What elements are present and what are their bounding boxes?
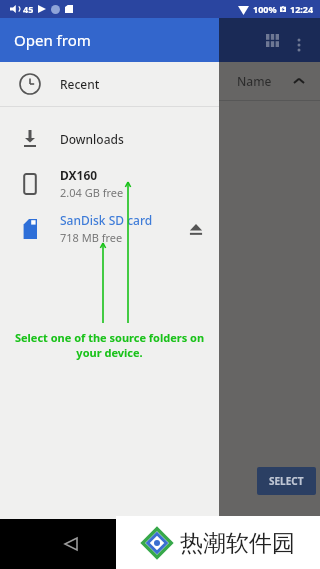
staticText: DX160 bbox=[60, 167, 98, 183]
staticText: 45 bbox=[23, 3, 34, 15]
button[interactable]: SanDisk SD card bbox=[0, 206, 219, 251]
button[interactable]: More options bbox=[286, 27, 312, 53]
staticText: 100% bbox=[253, 3, 277, 15]
button[interactable]: SELECT bbox=[257, 467, 316, 495]
button[interactable]: Recent bbox=[0, 62, 219, 106]
staticText: 12:24 bbox=[290, 3, 314, 15]
staticText: 718 MB free bbox=[60, 230, 123, 245]
staticText: Name bbox=[237, 73, 272, 89]
button[interactable]: Downloads bbox=[0, 117, 219, 161]
button[interactable]: Name bbox=[219, 62, 320, 100]
staticText: 2.04 GB free bbox=[60, 185, 124, 200]
staticText: Open from bbox=[14, 30, 91, 50]
staticText: SELECT bbox=[269, 474, 304, 488]
button[interactable]: Back bbox=[54, 527, 88, 561]
staticText: Select one of the source folders on your… bbox=[12, 330, 207, 360]
staticText: 热潮软件园 bbox=[180, 529, 295, 558]
staticText: Recent bbox=[60, 76, 100, 92]
staticText: Downloads bbox=[60, 131, 124, 147]
button[interactable]: Grid view bbox=[258, 26, 286, 54]
button[interactable]: DX160 bbox=[0, 161, 219, 206]
staticText: SanDisk SD card bbox=[60, 212, 153, 228]
